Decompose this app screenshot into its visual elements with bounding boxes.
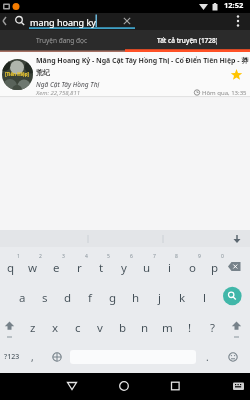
staticText: s — [42, 290, 48, 306]
staticText: Truyện đang đọc — [36, 36, 88, 45]
staticText: o — [189, 260, 196, 276]
staticText: k — [179, 290, 186, 306]
staticText: 7 — [153, 253, 156, 260]
staticText: Hôm qua, 13:35 — [202, 89, 247, 97]
button[interactable]: u — [117, 259, 177, 277]
button[interactable]: k — [152, 289, 212, 307]
button[interactable]: f — [60, 289, 120, 307]
staticText: t — [99, 260, 104, 276]
staticText: p — [211, 260, 219, 276]
staticText: [Tiên Hiệp] — [5, 71, 30, 77]
staticText: y — [121, 260, 127, 276]
staticText: x — [52, 320, 59, 336]
staticText: 荒纪 — [36, 68, 50, 77]
button[interactable]: . — [177, 348, 237, 366]
staticText: 0 — [221, 253, 224, 260]
button[interactable]: n — [115, 319, 175, 337]
button[interactable] — [125, 30, 250, 52]
staticText: q — [7, 260, 15, 276]
button[interactable]: ?123 — [0, 348, 42, 366]
staticText: a — [19, 290, 26, 306]
staticText: g — [109, 290, 117, 306]
staticText: l — [203, 290, 206, 306]
staticText: mang hoang ky — [30, 16, 96, 28]
button[interactable]: ? — [182, 319, 242, 337]
button[interactable]: q — [0, 259, 41, 277]
button[interactable]: , — [2, 348, 62, 366]
button[interactable]: h — [106, 289, 166, 307]
staticText: b — [119, 320, 127, 336]
button[interactable]: ! — [160, 319, 220, 337]
button[interactable]: l — [174, 289, 234, 307]
staticText: z — [30, 320, 36, 336]
button[interactable]: t — [71, 259, 131, 277]
staticText: c — [75, 320, 81, 336]
staticText: e — [53, 260, 60, 276]
staticText: i — [168, 260, 171, 276]
staticText: j — [158, 290, 161, 306]
staticText: Ngã Cật Tây Hồng Thị — [36, 80, 100, 89]
button[interactable]: i — [139, 259, 199, 277]
staticText: d — [64, 290, 72, 306]
staticText: v — [97, 320, 103, 336]
button[interactable]: v — [70, 319, 130, 337]
button[interactable]: o — [162, 259, 222, 277]
button[interactable]: b — [93, 319, 153, 337]
button[interactable]: d — [38, 289, 98, 307]
staticText: 1 — [17, 253, 20, 260]
button[interactable]: w — [3, 259, 63, 277]
button[interactable]: mang hoang ky — [0, 13, 250, 30]
button[interactable] — [163, 375, 187, 398]
staticText: . — [206, 350, 209, 364]
button[interactable]: g — [83, 289, 143, 307]
button[interactable] — [60, 375, 84, 398]
staticText: Tất cả truyện (1728) — [157, 36, 217, 45]
button[interactable]: p — [185, 259, 245, 277]
staticText: h — [132, 290, 140, 306]
staticText: 9 — [198, 253, 201, 260]
staticText: 2 — [39, 253, 42, 260]
staticText: w — [28, 260, 38, 276]
staticText: Xem: 22,758,811 — [36, 89, 81, 97]
staticText: 5 — [107, 253, 110, 260]
staticText: 3 — [62, 253, 65, 260]
button[interactable]: x — [25, 319, 85, 337]
staticText: f — [88, 290, 92, 306]
staticText: 12:52 — [224, 0, 244, 10]
staticText: n — [141, 320, 149, 336]
staticText: u — [143, 260, 151, 276]
button[interactable]: c — [48, 319, 108, 337]
staticText: 8 — [175, 253, 178, 260]
staticText: 4 — [85, 253, 88, 260]
button[interactable] — [0, 30, 125, 52]
button[interactable] — [112, 375, 136, 398]
button[interactable]: r — [49, 259, 109, 277]
button[interactable]: a — [0, 289, 52, 307]
staticText: Măng Hoang Kỷ - Ngã Cật Tây Hồng Thị - C… — [36, 56, 249, 66]
staticText: r — [77, 260, 82, 276]
button[interactable]: [Tiên Hiệp] — [0, 52, 250, 97]
button[interactable]: z — [3, 319, 63, 337]
staticText: ?123 — [4, 352, 20, 362]
button[interactable]: y — [94, 259, 154, 277]
staticText: 6 — [130, 253, 133, 260]
staticText: m — [162, 320, 173, 336]
staticText: , — [31, 350, 34, 364]
staticText: ? — [210, 320, 215, 336]
button[interactable]: e — [26, 259, 86, 277]
staticText: ! — [188, 320, 192, 336]
button[interactable]: s — [15, 289, 75, 307]
button[interactable]: m — [137, 319, 197, 337]
button[interactable]: j — [129, 289, 189, 307]
